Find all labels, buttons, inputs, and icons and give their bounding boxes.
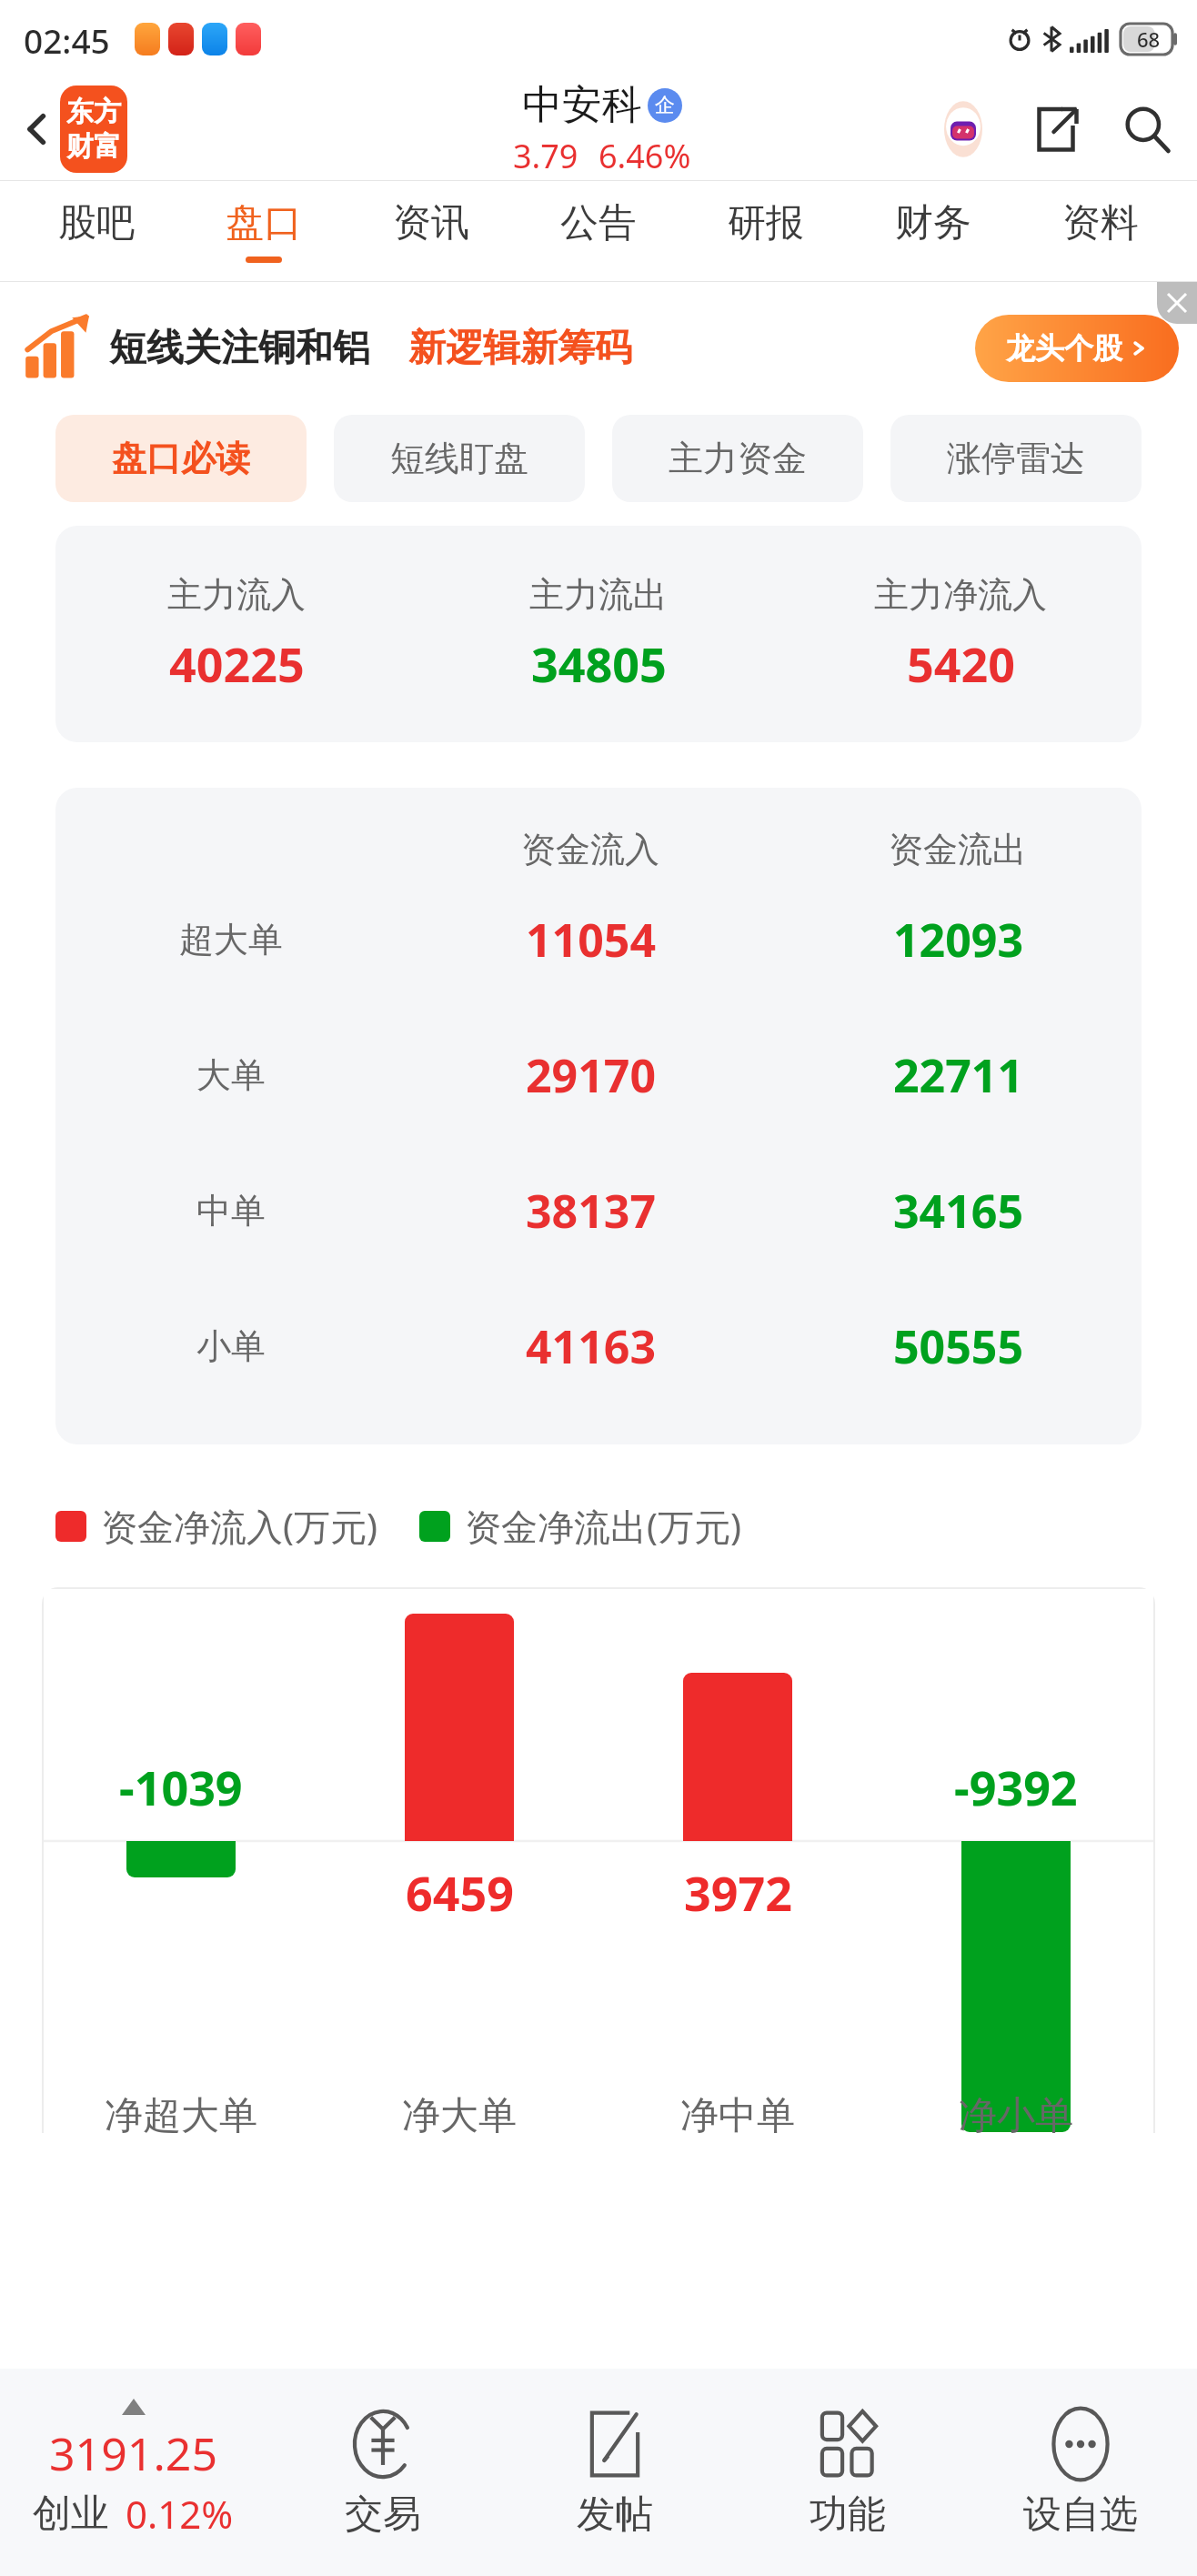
staticText: 中安科: [522, 80, 642, 130]
staticText: 财务: [895, 199, 971, 247]
staticText: 股吧: [58, 199, 135, 247]
staticText: 0.12%: [126, 2488, 234, 2540]
button[interactable]: 短线盯盘: [334, 415, 585, 502]
staticText: 涨停雷达: [947, 437, 1085, 480]
staticText: 68: [1137, 25, 1161, 53]
staticText: 交易: [345, 2490, 421, 2539]
button[interactable]: 大单: [55, 1007, 1142, 1142]
staticText: 净中单: [680, 2092, 795, 2133]
button[interactable]: 交易: [267, 2407, 498, 2539]
staticText: 盘口必读: [112, 437, 250, 480]
staticText: 5420: [907, 631, 1015, 696]
staticText: 41163: [526, 1315, 656, 1377]
button[interactable]: 股吧: [13, 181, 180, 281]
staticText: 财富: [66, 129, 121, 164]
staticText: 资金净流入(万元): [101, 1501, 377, 1551]
staticText: 资讯: [393, 199, 469, 247]
staticText: 小单: [196, 1324, 266, 1368]
button[interactable]: 盘口必读: [55, 415, 307, 502]
staticText: 资金净流出(万元): [465, 1501, 741, 1551]
staticText: -9392: [954, 1755, 1078, 1819]
staticText: 净小单: [959, 2092, 1073, 2133]
button[interactable]: 东方财富: [60, 86, 127, 173]
staticText: 主力流出: [529, 573, 668, 617]
staticText: 40225: [169, 631, 305, 696]
button[interactable]: 公告: [515, 181, 682, 281]
button[interactable]: Close: [1157, 282, 1197, 324]
button[interactable]: 小单: [55, 1278, 1142, 1414]
staticText: 东方: [66, 95, 121, 129]
staticText: 主力流入: [167, 573, 306, 617]
staticText: 50555: [893, 1315, 1023, 1377]
button[interactable]: 3191.25: [0, 2406, 267, 2540]
staticText: 新逻辑新筹码: [408, 325, 632, 372]
button[interactable]: AI 助手: [931, 97, 995, 161]
staticText: 企: [655, 93, 675, 118]
staticText: 净超大单: [105, 2092, 257, 2133]
button[interactable]: 中单: [55, 1142, 1142, 1278]
staticText: 短线关注铜和铝: [109, 325, 370, 372]
staticText: 34165: [893, 1180, 1023, 1242]
button[interactable]: 功能: [731, 2407, 964, 2539]
button[interactable]: Back: [7, 99, 67, 159]
button[interactable]: 发帖: [498, 2407, 731, 2539]
button[interactable]: 设自选: [964, 2407, 1197, 2539]
button[interactable]: 研报: [682, 181, 850, 281]
button[interactable]: 龙头个股: [975, 315, 1179, 382]
staticText: 38137: [526, 1180, 656, 1242]
staticText: 功能: [810, 2490, 886, 2539]
button[interactable]: 财务: [850, 181, 1017, 281]
staticText: 22711: [893, 1044, 1023, 1106]
staticText: 创业: [33, 2490, 109, 2538]
staticText: 主力净流入: [874, 573, 1047, 617]
button[interactable]: 超大单: [55, 871, 1142, 1007]
staticText: 6.46%: [598, 134, 691, 178]
staticText: 超大单: [179, 918, 283, 961]
staticText: 资金流出: [889, 828, 1027, 871]
staticText: 3972: [684, 1860, 792, 1925]
staticText: 龙头个股: [1006, 330, 1122, 367]
staticText: 大单: [196, 1053, 266, 1097]
button[interactable]: Search: [1117, 99, 1177, 159]
staticText: 3.79: [513, 134, 578, 178]
staticText: 6459: [406, 1860, 514, 1925]
staticText: 中单: [196, 1189, 266, 1233]
staticText: 公告: [560, 199, 637, 247]
staticText: 12093: [893, 909, 1023, 971]
button[interactable]: 资讯: [347, 181, 515, 281]
staticText: 研报: [728, 199, 804, 247]
staticText: 29170: [526, 1044, 656, 1106]
staticText: 资料: [1062, 199, 1139, 247]
staticText: 3191.25: [49, 2422, 217, 2484]
staticText: 主力资金: [669, 437, 807, 480]
button[interactable]: 主力流入: [55, 526, 1142, 742]
staticText: 11054: [526, 909, 656, 971]
staticText: 资金流入: [521, 828, 659, 871]
staticText: -1039: [119, 1755, 243, 1819]
button[interactable]: 盘口: [180, 181, 347, 281]
staticText: 净大单: [402, 2092, 517, 2133]
button[interactable]: 涨停雷达: [890, 415, 1142, 502]
staticText: 短线盯盘: [390, 437, 528, 480]
staticText: 设自选: [1023, 2490, 1138, 2539]
button[interactable]: Share: [1028, 101, 1084, 157]
button[interactable]: 资料: [1017, 181, 1184, 281]
staticText: 发帖: [577, 2490, 653, 2539]
button[interactable]: 主力资金: [612, 415, 863, 502]
staticText: 盘口: [226, 199, 302, 247]
staticText: 02:45: [24, 17, 110, 63]
staticText: 34805: [531, 631, 667, 696]
